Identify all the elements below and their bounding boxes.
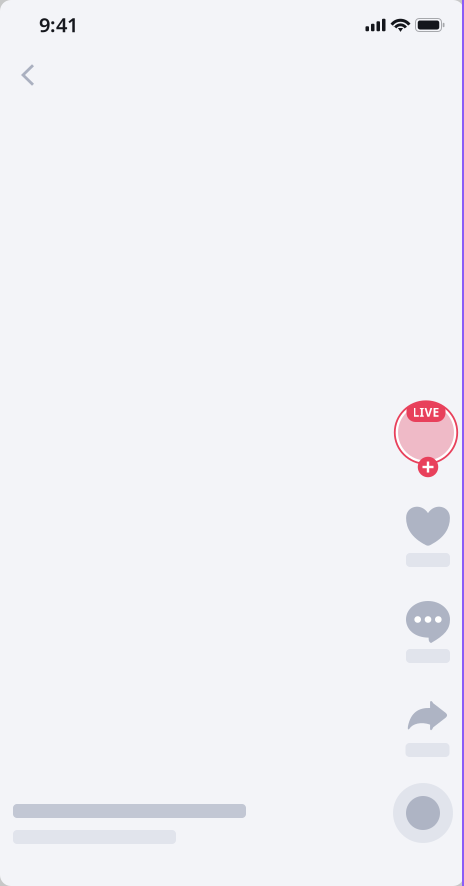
button[interactable]: Comments — [406, 601, 450, 663]
button[interactable]: Like — [406, 505, 450, 567]
button[interactable]: Share — [405, 695, 449, 757]
staticText: LIVE — [412, 404, 439, 420]
button[interactable]: Back — [11, 53, 45, 97]
staticText: 9:41 — [39, 11, 78, 38]
button[interactable]: Profile, live — [393, 386, 459, 478]
button[interactable]: Sound — [393, 783, 453, 843]
